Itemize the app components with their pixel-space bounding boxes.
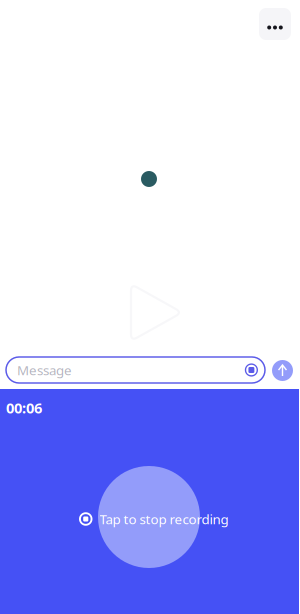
staticText: Message [17, 361, 72, 379]
button[interactable]: More options [259, 8, 291, 40]
button[interactable]: Send [272, 360, 293, 381]
staticText: 00:06 [6, 398, 42, 417]
button[interactable]: Tap to stop recording [79, 510, 228, 528]
staticText: Tap to stop recording [99, 510, 228, 528]
